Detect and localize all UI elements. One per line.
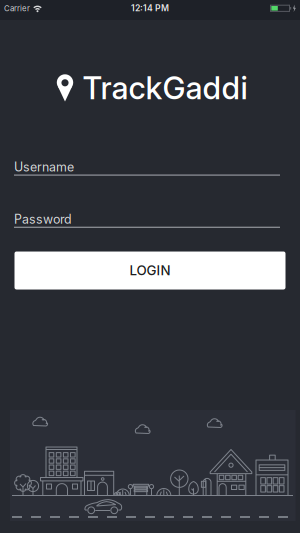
staticText: Username [14,159,74,174]
staticText: 12:14 PM [131,3,169,13]
staticText: TrackGaddi [82,69,247,107]
button[interactable]: Password [14,212,280,228]
button[interactable]: Username [14,159,280,176]
button[interactable]: LOGIN [14,251,285,289]
staticText: Carrier [4,4,30,13]
staticText: LOGIN [129,262,170,278]
staticText: Password [14,212,72,227]
